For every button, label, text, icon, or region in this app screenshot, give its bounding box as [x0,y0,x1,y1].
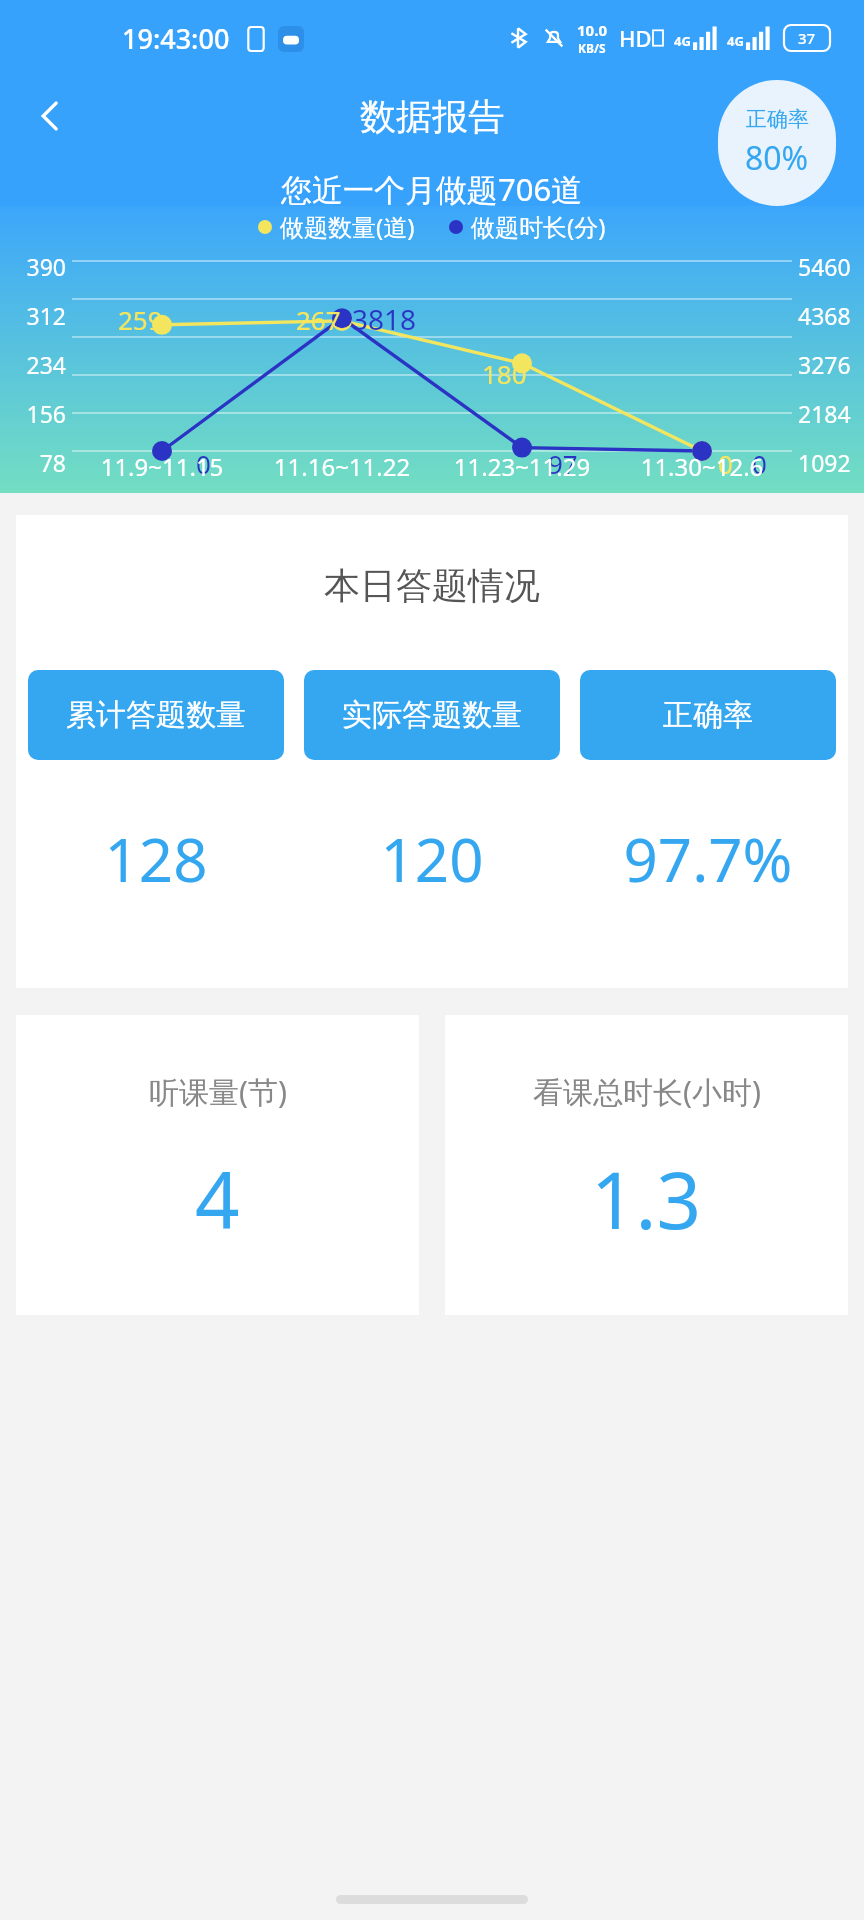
staticText: 0 [718,446,733,481]
button[interactable]: 正确率 [580,670,836,760]
staticText: 0 [752,446,767,481]
staticText: 19:43:00 [122,20,230,57]
staticText: 37 [798,28,816,48]
button[interactable]: 听课量(节) [16,1015,419,1315]
staticText: 4368 [798,300,852,331]
staticText: 312 [12,300,66,331]
staticText: 看课总时长(小时) [533,1071,761,1112]
staticText: 4G [727,32,744,50]
staticText: 120 [304,818,560,900]
staticText: 实际答题数量 [342,696,522,734]
staticText: HD [619,23,652,53]
staticText: 11.23~11.29 [432,450,612,483]
staticText: 累计答题数量 [66,696,246,734]
staticText: 156 [12,398,66,429]
staticText: 0 [196,446,211,481]
staticText: 128 [28,818,284,900]
staticText: 本日答题情况 [324,563,540,608]
staticText: 234 [12,349,66,380]
staticText: 78 [12,447,66,478]
staticText: 97.7% [580,818,836,900]
button[interactable]: 累计答题数量 [28,670,284,760]
staticText: 1092 [798,447,852,478]
staticText: 11.9~11.15 [72,450,252,483]
staticText: 180 [482,356,527,391]
staticText: 259 [118,302,163,337]
staticText: 听课量(节) [149,1071,287,1112]
staticText: 数据报告 [360,94,504,139]
staticText: 做题时长(分) [471,210,606,243]
staticText: 11.30~12.6 [612,450,792,483]
staticText: 10.0 [577,20,607,40]
button[interactable]: 实际答题数量 [304,670,560,760]
staticText: 4G [674,32,691,50]
staticText: 267 [296,302,341,337]
staticText: 11.16~11.22 [252,450,432,483]
staticText: KB/S [578,40,606,56]
button[interactable]: 看课总时长(小时) [445,1015,848,1315]
staticText: 4 [195,1146,240,1252]
button[interactable]: Back [18,84,82,148]
staticText: 3276 [798,349,852,380]
staticText: 390 [12,251,66,282]
staticText: 正确率 [663,696,753,734]
staticText: 正确率 [746,106,809,132]
staticText: 80% [745,136,809,180]
staticText: 做题数量(道) [280,210,415,243]
staticText: 1.3 [591,1146,702,1252]
staticText: 2184 [798,398,852,429]
staticText: 您近一个月做题706道 [281,168,583,206]
button[interactable]: 正确率 [718,80,836,206]
staticText: 3818 [352,300,417,338]
staticText: 97 [548,446,578,481]
staticText: 5460 [798,251,852,282]
